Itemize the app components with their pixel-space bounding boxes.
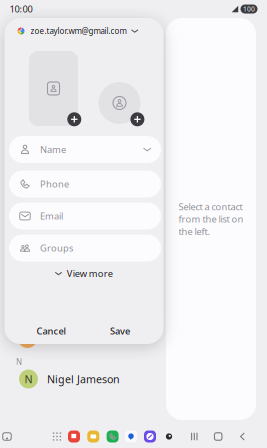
button[interactable]: Email [9,202,161,229]
button[interactable]: View more [54,266,114,280]
button[interactable]: Groups [9,234,161,261]
staticText: View more [67,267,113,280]
button[interactable]: Keyboard [0,428,16,444]
staticText: Save [110,325,130,337]
button[interactable]: Phone [9,170,161,197]
staticText: Name [40,143,66,156]
staticText: N [16,357,22,367]
button[interactable]: Recent apps [184,427,204,445]
staticText: Cancel [36,325,66,337]
button[interactable]: zoe.taylor.wm@gmail.com [4,21,163,41]
staticText: Select a contact from the list on the le… [178,200,243,238]
staticText: zoe.taylor.wm@gmail.com [30,26,126,36]
button[interactable]: Add profile picture [130,112,144,126]
button[interactable]: N [0,366,163,392]
button[interactable]: Cancel [32,323,70,339]
staticText: Email [40,210,63,222]
button[interactable]: Back [232,427,252,445]
staticText: 10:00 [9,3,32,15]
staticText: Phone [40,178,69,190]
staticText: 100 [243,5,255,13]
staticText: Groups [40,242,73,254]
staticText: N [24,372,32,386]
button[interactable]: Home [208,427,228,445]
button[interactable]: Add photo [67,112,81,126]
button[interactable]: Name [9,136,161,163]
staticText: Nigel Jameson [47,372,120,386]
button[interactable]: Save [105,323,135,339]
